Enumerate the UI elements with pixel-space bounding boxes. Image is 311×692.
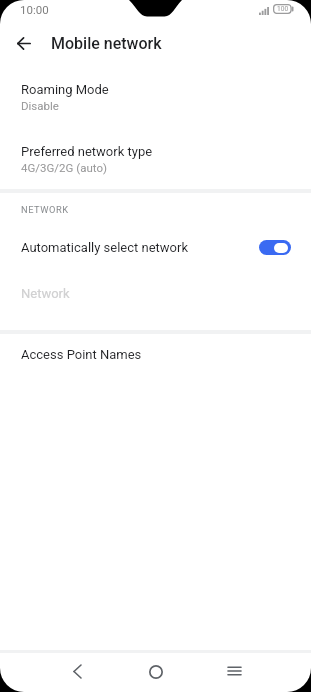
staticText: Access Point Names	[21, 347, 142, 362]
button[interactable]: Access Point Names	[0, 334, 311, 364]
staticText: Disable	[21, 99, 59, 112]
staticText: Network	[21, 286, 70, 300]
staticText: 10:00	[20, 3, 49, 16]
button[interactable]: Network	[0, 265, 311, 300]
button[interactable]: Back	[38, 652, 117, 691]
button[interactable]: Roaming Mode	[0, 63, 311, 124]
button[interactable]: Recent apps	[195, 652, 273, 691]
staticText: 100	[277, 5, 289, 13]
button[interactable]: Preferred network type	[0, 124, 311, 177]
staticText: Automatically select network	[21, 240, 259, 255]
button[interactable]: Home	[117, 652, 195, 691]
staticText: Roaming Mode	[21, 82, 109, 97]
staticText: NETWORK	[21, 204, 69, 215]
staticText: 4G/3G/2G (auto)	[21, 161, 107, 174]
staticText: Mobile network	[51, 34, 162, 53]
button[interactable]: Automatically select network	[0, 219, 311, 265]
staticText: Preferred network type	[21, 144, 153, 159]
button[interactable]: Back	[2, 22, 46, 64]
